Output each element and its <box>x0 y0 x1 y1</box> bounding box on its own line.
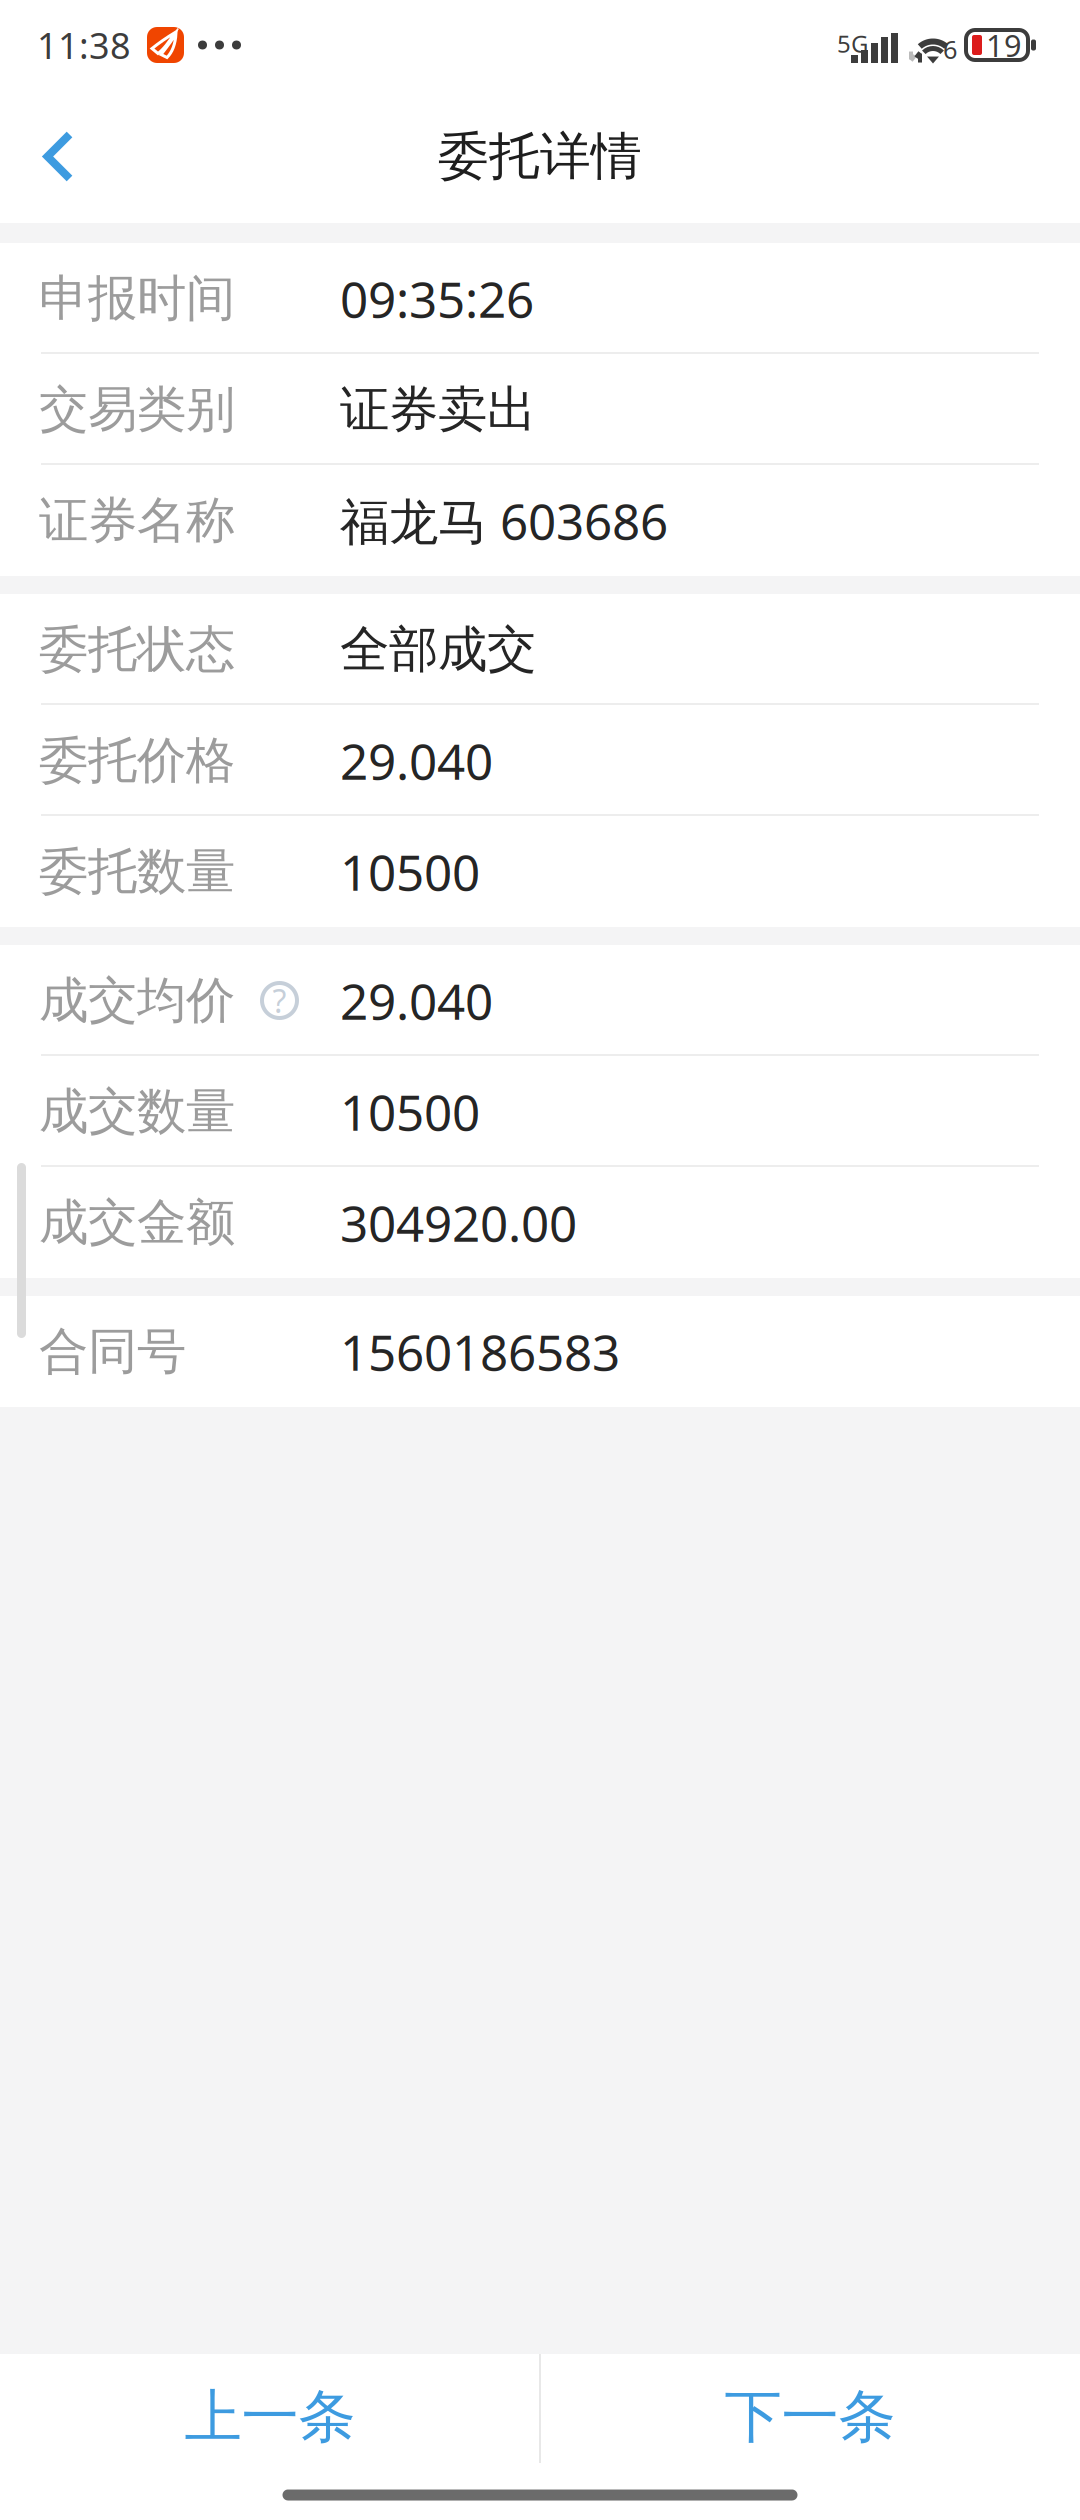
staticText: 09:35:26 <box>340 265 534 332</box>
staticText: 29.040 <box>340 727 493 794</box>
button[interactable]: Back <box>0 90 117 223</box>
staticText: 6 <box>943 32 957 66</box>
staticText: 委托价格 <box>39 729 235 791</box>
staticText: ? <box>272 979 286 1022</box>
staticText: 成交数量 <box>39 1080 235 1142</box>
staticText: 上一条 <box>184 2381 355 2453</box>
staticText: 10500 <box>340 1078 480 1145</box>
staticText: 11:38 <box>37 20 131 69</box>
staticText: 304920.00 <box>340 1189 577 1256</box>
staticText: 委托数量 <box>39 840 235 902</box>
staticText: 成交均价 <box>39 969 235 1031</box>
staticText: 19 <box>986 24 1022 66</box>
staticText: 证券名称 <box>39 489 235 551</box>
staticText: 10500 <box>340 838 480 905</box>
staticText: 全部成交 <box>340 618 536 680</box>
staticText: 福龙马 603686 <box>340 487 668 554</box>
staticText: 委托状态 <box>39 618 235 680</box>
staticText: 申报时间 <box>39 267 235 329</box>
staticText: 5G <box>837 27 868 60</box>
staticText: 29.040 <box>340 967 493 1034</box>
staticText: 下一条 <box>724 2381 895 2453</box>
button[interactable]: 下一条 <box>540 2354 1080 2480</box>
staticText: 委托详情 <box>438 125 642 188</box>
button[interactable]: 上一条 <box>0 2354 540 2480</box>
staticText: 成交金额 <box>39 1191 235 1253</box>
staticText: 交易类别 <box>39 378 235 440</box>
staticText: 合同号 <box>39 1320 186 1382</box>
staticText: 1560186583 <box>340 1318 620 1385</box>
staticText: 证券卖出 <box>340 378 536 440</box>
